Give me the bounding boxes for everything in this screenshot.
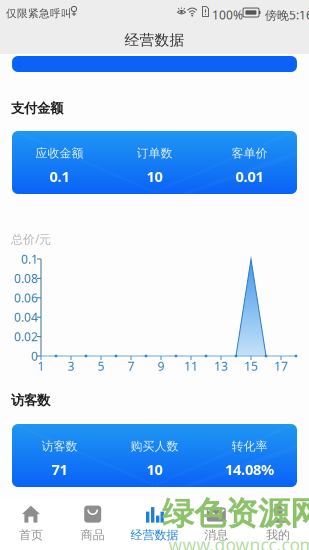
staticText: 经营数据 <box>124 31 184 49</box>
staticText: 10 <box>146 460 162 479</box>
staticText: 消息 <box>204 528 228 542</box>
staticText: 0 <box>31 348 38 364</box>
staticText: 订单数 <box>136 146 172 161</box>
staticText: 13 <box>214 358 228 374</box>
staticText: 总价/元 <box>11 231 51 247</box>
staticText: 应收金额 <box>35 146 83 161</box>
staticText: 11 <box>184 358 198 374</box>
staticText: 0.02 <box>14 329 38 344</box>
button[interactable]: 消息 <box>185 497 247 550</box>
staticText: 仅限紧急呼叫 <box>6 7 72 20</box>
staticText: 0.1 <box>49 167 69 186</box>
staticText: 15 <box>244 358 258 374</box>
staticText: 17 <box>274 358 288 374</box>
staticText: 0.01 <box>235 167 263 186</box>
staticText: 0.04 <box>14 309 38 325</box>
staticText: 首页 <box>19 528 43 542</box>
staticText: 转化率 <box>231 439 267 454</box>
staticText: 购买人数 <box>130 439 178 454</box>
staticText: 0.08 <box>14 270 38 286</box>
staticText: 商品 <box>81 528 105 542</box>
button[interactable]: 我的 <box>247 497 309 550</box>
staticText: 0.1 <box>21 251 38 267</box>
staticText: 9 <box>157 358 164 374</box>
staticText: 10 <box>146 167 162 186</box>
staticText: 客单价 <box>231 146 267 161</box>
staticText: 支付金额 <box>11 100 63 116</box>
staticText: 3 <box>67 358 74 374</box>
staticText: 经营数据 <box>130 528 178 542</box>
staticText: 傍晚5:16 <box>265 7 309 23</box>
staticText: 访客数 <box>41 439 77 454</box>
staticText: 0.06 <box>14 290 38 306</box>
staticText: www.downcc.com <box>168 533 309 550</box>
staticText: 71 <box>51 460 67 479</box>
staticText: 100% <box>212 7 243 23</box>
button[interactable]: 首页 <box>0 497 62 550</box>
button[interactable]: 经营数据 <box>124 497 185 550</box>
staticText: 7 <box>127 358 134 374</box>
staticText: 绿色资源网 <box>162 494 309 533</box>
staticText: 我的 <box>266 528 290 542</box>
staticText: 访客数 <box>11 392 50 408</box>
staticText: 1 <box>37 358 44 374</box>
staticText: 5 <box>97 358 104 374</box>
button[interactable]: 商品 <box>62 497 124 550</box>
staticText: 14.08% <box>225 460 274 479</box>
